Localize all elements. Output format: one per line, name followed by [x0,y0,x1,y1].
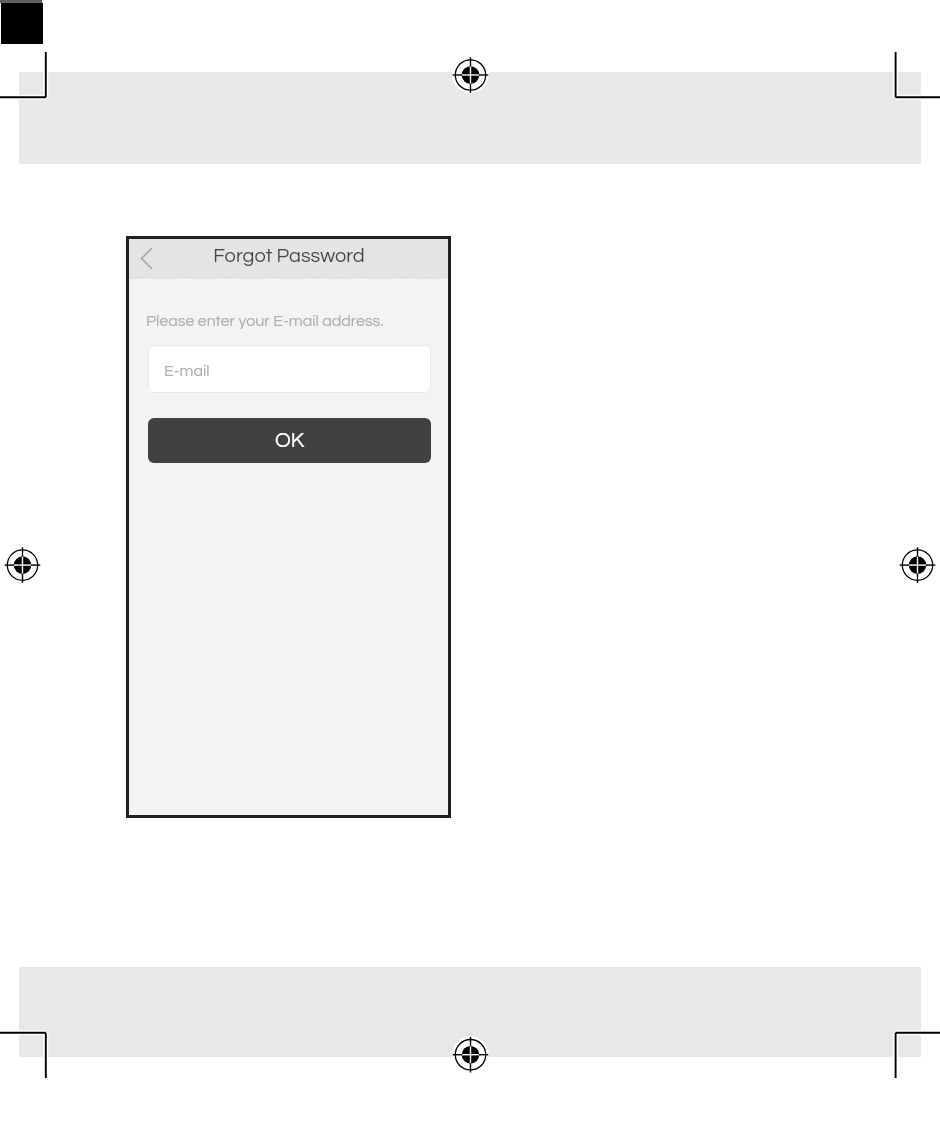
button[interactable]: OK [148,418,431,463]
staticText: Please enter your E-mail address. [146,313,384,329]
staticText: OK [275,430,305,452]
button[interactable]: E-mail [148,345,431,393]
staticText: E-mail [164,363,210,379]
button[interactable]: Back [129,239,163,278]
staticText: Forgot Password [213,246,365,267]
